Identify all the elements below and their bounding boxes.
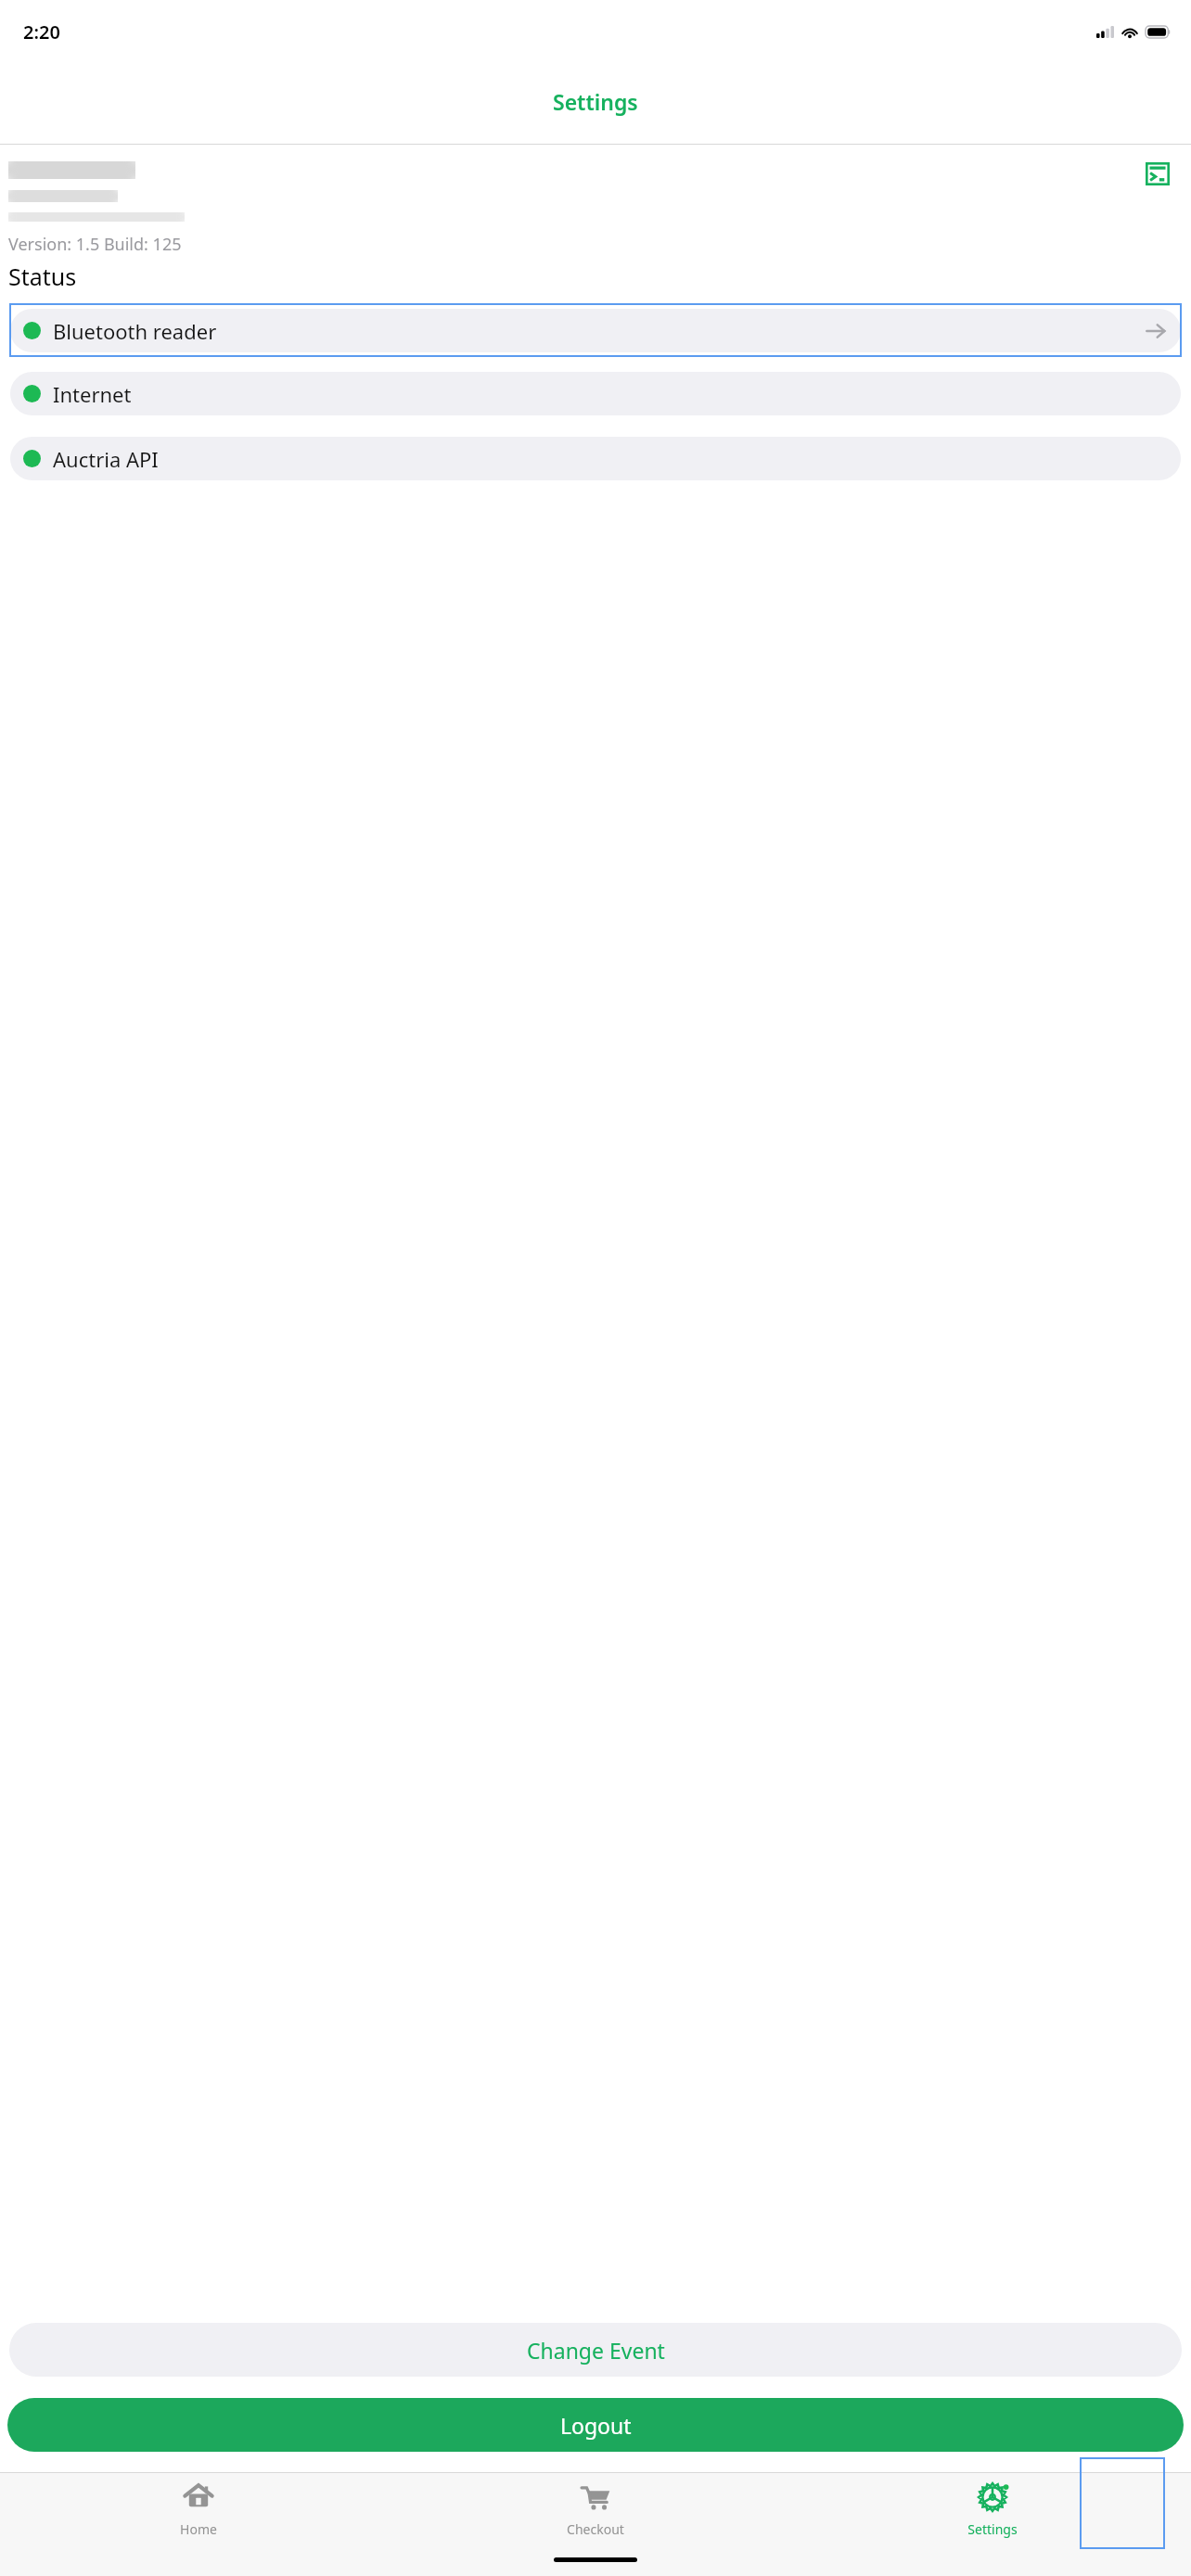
staticText: Status <box>8 261 77 292</box>
button[interactable]: Checkout <box>397 2473 794 2549</box>
button[interactable]: Logout <box>7 2398 1184 2452</box>
button[interactable]: Settings <box>794 2473 1191 2549</box>
button[interactable]: Developer console <box>1136 152 1179 195</box>
staticText: Home <box>180 2520 217 2538</box>
staticText: Logout <box>560 2411 632 2440</box>
button[interactable]: Change Event <box>9 2323 1182 2377</box>
button[interactable]: Internet <box>10 372 1181 415</box>
staticText: Checkout <box>567 2520 624 2538</box>
staticText: Settings <box>967 2520 1018 2538</box>
staticText: Version: 1.5 Build: 125 <box>8 233 182 256</box>
staticText: Change Event <box>527 2336 665 2365</box>
staticText: Auctria API <box>53 445 159 473</box>
staticText: Internet <box>53 380 132 408</box>
staticText: 2:20 <box>23 19 60 45</box>
button[interactable]: Bluetooth reader <box>9 303 1182 357</box>
staticText: Settings <box>553 87 638 116</box>
button[interactable]: Home <box>0 2473 397 2549</box>
button[interactable]: Bluetooth reader <box>10 309 1181 352</box>
button[interactable]: Auctria API <box>10 437 1181 480</box>
staticText: Bluetooth reader <box>53 317 217 345</box>
